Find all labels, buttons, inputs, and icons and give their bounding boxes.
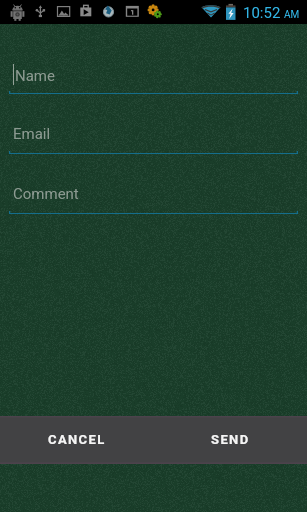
staticText: Name [15,67,55,85]
button[interactable]: SEND [153,416,307,464]
staticText: Comment [13,185,79,203]
button[interactable]: Email [0,113,307,157]
staticText: SEND [211,432,250,447]
button[interactable]: CANCEL [0,416,153,464]
staticText: 10:52 [243,4,281,22]
staticText: CANCEL [48,432,106,447]
button[interactable]: Comment [0,173,307,217]
button[interactable]: Name [0,53,307,97]
staticText: AM [284,9,300,21]
staticText: Email [13,125,51,143]
